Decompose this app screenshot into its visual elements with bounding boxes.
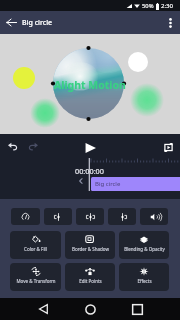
button[interactable]: Recent apps: [123, 298, 151, 320]
button[interactable]: Volume: [140, 208, 168, 225]
button[interactable]: Move & Transform: [10, 263, 61, 291]
button[interactable]: Collapse track: [76, 176, 86, 186]
button[interactable]: Previous keyframe: [44, 208, 72, 225]
staticText: Big circle: [95, 180, 121, 188]
button[interactable]: Speed: [11, 208, 40, 225]
staticText: 50%: [142, 2, 154, 10]
button[interactable]: Undo: [5, 138, 21, 154]
button[interactable]: Back: [29, 298, 57, 320]
button[interactable]: Big circle: [91, 177, 180, 191]
button[interactable]: Back: [0, 11, 22, 34]
button[interactable]: Edit Points: [65, 263, 115, 291]
button[interactable]: Export: [159, 138, 178, 157]
button[interactable]: Add keyframe: [76, 208, 104, 225]
staticText: 00:00:00: [75, 166, 104, 176]
button[interactable]: Home: [76, 298, 104, 320]
button[interactable]: Blending & Opacity: [119, 231, 169, 259]
button[interactable]: Redo: [25, 138, 41, 154]
staticText: Effects: [137, 278, 152, 284]
button[interactable]: Next keyframe: [108, 208, 136, 225]
staticText: Edit Points: [79, 278, 102, 284]
button[interactable]: More options: [160, 11, 180, 34]
staticText: Color & Fill: [24, 246, 47, 252]
staticText: Alight Motion: [54, 78, 126, 92]
button[interactable]: Effects: [119, 263, 169, 291]
staticText: Blending & Opacity: [124, 246, 165, 252]
button[interactable]: Play: [81, 138, 100, 157]
staticText: 2:30: [161, 2, 173, 10]
button[interactable]: Border & Shadow: [65, 231, 115, 259]
staticText: Move & Transform: [16, 278, 56, 284]
staticText: Border & Shadow: [72, 246, 109, 252]
button[interactable]: Color & Fill: [10, 231, 61, 259]
staticText: Big circle: [22, 18, 53, 28]
